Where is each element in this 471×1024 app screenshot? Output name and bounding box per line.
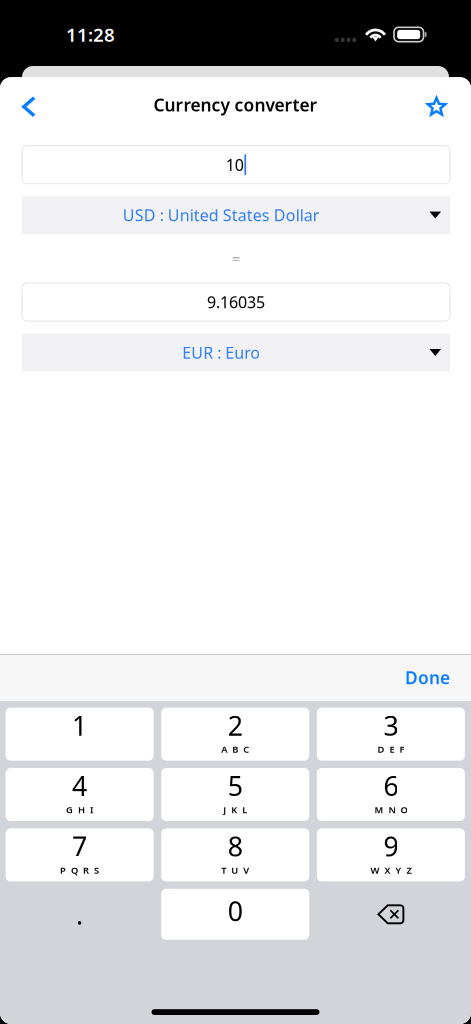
staticText: Currency converter (153, 93, 317, 116)
staticText: 0 (228, 893, 243, 929)
staticText: 3 (383, 708, 398, 743)
staticText: Done (405, 666, 450, 689)
staticText: T U V (221, 864, 249, 876)
staticText: 6 (383, 768, 398, 803)
staticText: USD : United States Dollar (123, 204, 320, 226)
staticText: D E F (377, 743, 404, 755)
button[interactable]: 2 (161, 708, 309, 761)
staticText: P Q R S (60, 864, 99, 876)
button[interactable]: 0 (161, 889, 309, 940)
staticText: . (76, 897, 83, 932)
staticText: 11:28 (66, 22, 115, 47)
staticText: EUR : Euro (182, 342, 260, 363)
staticText: 10 (226, 154, 244, 175)
button[interactable]: 8 (161, 828, 309, 881)
button[interactable]: 4 (6, 768, 154, 821)
button[interactable]: Back (7, 85, 51, 129)
button[interactable]: EUR : Euro (22, 333, 450, 371)
button[interactable]: Done (389, 654, 471, 701)
staticText: W X Y Z (370, 864, 411, 876)
staticText: = (232, 249, 240, 268)
button[interactable]: 9 (317, 828, 465, 881)
button[interactable]: 7 (6, 828, 154, 881)
button[interactable]: 6 (317, 768, 465, 821)
button[interactable]: Decimal point (6, 889, 154, 940)
button[interactable]: 3 (317, 708, 465, 761)
button[interactable]: 5 (161, 768, 309, 821)
staticText: 8 (228, 828, 243, 864)
button[interactable]: Delete (317, 889, 465, 940)
staticText: 7 (72, 828, 87, 864)
staticText: 9 (383, 828, 398, 864)
staticText: 4 (72, 768, 87, 803)
staticText: 1 (72, 708, 87, 743)
button[interactable]: USD : United States Dollar (22, 196, 450, 234)
staticText: 9.16035 (207, 291, 265, 313)
staticText: J K L (223, 803, 247, 816)
staticText: G H I (66, 803, 93, 816)
staticText: 2 (228, 708, 243, 743)
staticText: M N O (374, 803, 407, 816)
button[interactable]: Favorite (414, 85, 458, 129)
staticText: A B C (221, 743, 249, 755)
staticText: 5 (228, 768, 243, 803)
button[interactable]: 1 (6, 708, 154, 761)
